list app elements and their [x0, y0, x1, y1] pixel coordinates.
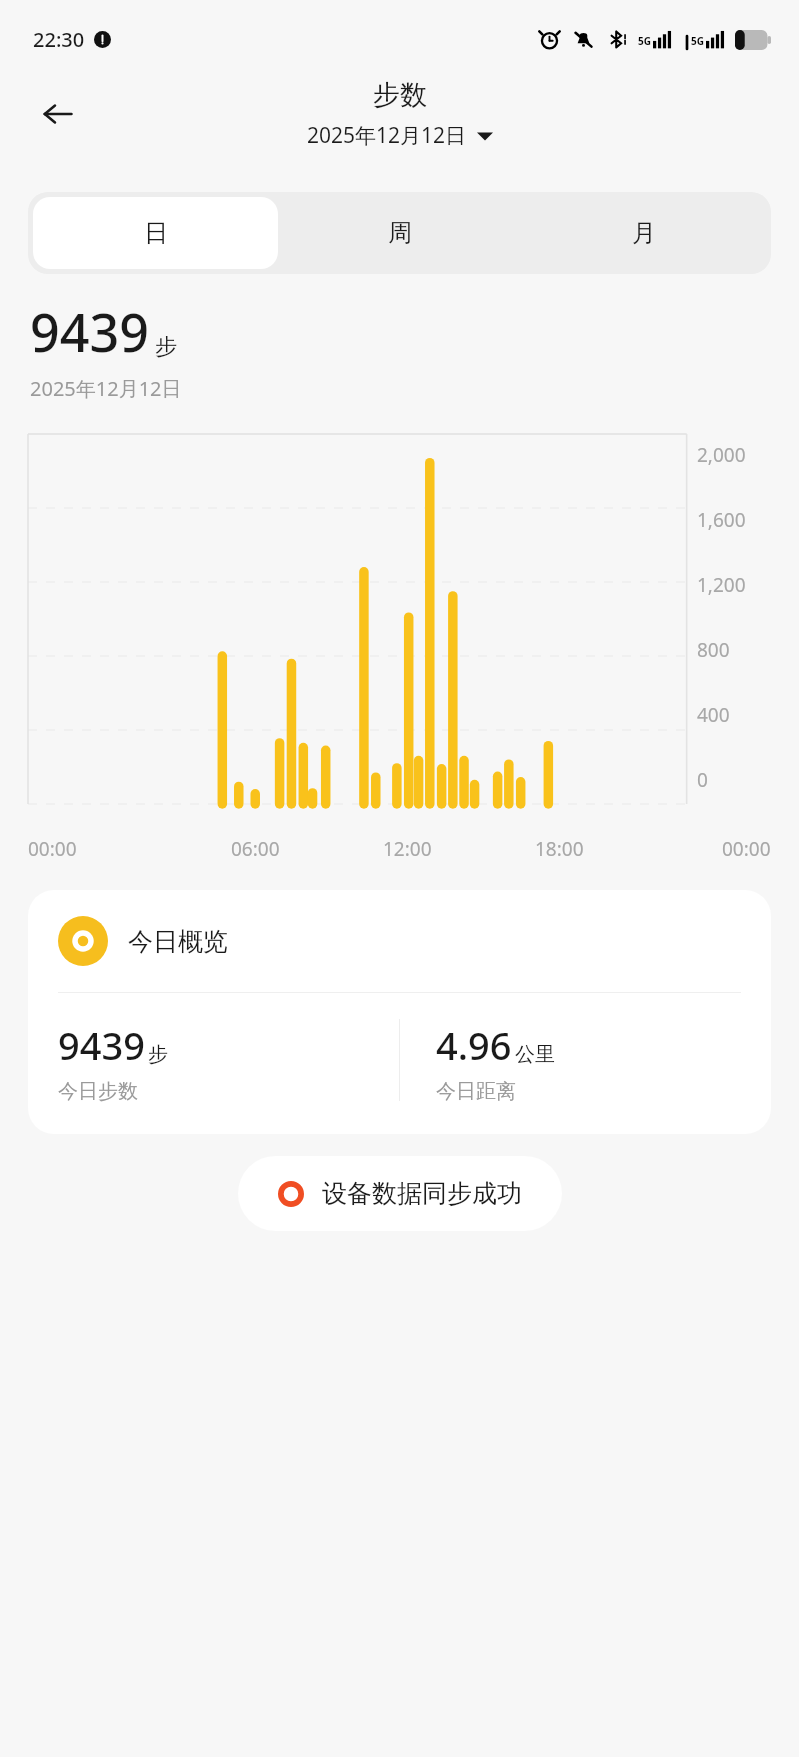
staticText: 2,000	[697, 442, 746, 468]
staticText: 4.96	[436, 1019, 512, 1071]
staticText: 1,200	[697, 572, 746, 598]
button[interactable]: 今日概览	[28, 890, 771, 1134]
staticText: 今日概览	[128, 926, 228, 957]
staticText: 步	[155, 333, 177, 361]
staticText: 步	[148, 1042, 168, 1067]
staticText: 1,600	[697, 507, 746, 533]
staticText: 步数	[373, 78, 427, 112]
staticText: 06:00	[231, 836, 280, 862]
staticText: 12:00	[383, 836, 432, 862]
staticText: 2025年12月12日	[307, 121, 467, 150]
button[interactable]: Back	[30, 86, 86, 142]
staticText: 9439	[58, 1019, 145, 1071]
button[interactable]: 日	[33, 197, 278, 269]
staticText: 公里	[515, 1042, 555, 1067]
staticText: 今日步数	[58, 1079, 138, 1104]
staticText: 设备数据同步成功	[322, 1178, 522, 1209]
staticText: 18:00	[535, 836, 584, 862]
button[interactable]: 月	[522, 197, 766, 269]
staticText: 今日距离	[436, 1079, 516, 1104]
staticText: 2025年12月12日	[30, 375, 182, 402]
staticText: 22:30	[33, 26, 85, 53]
button[interactable]: 周	[278, 197, 522, 269]
staticText: 400	[697, 702, 730, 728]
staticText: 5G	[638, 34, 651, 48]
staticText: 800	[697, 637, 730, 663]
staticText: 9439	[30, 296, 149, 367]
button[interactable]: 设备数据同步成功	[238, 1156, 562, 1231]
staticText: 日	[144, 218, 168, 248]
staticText: 月	[632, 218, 656, 248]
button[interactable]: 2025年12月12日	[303, 119, 497, 152]
staticText: 00:00	[28, 836, 77, 862]
staticText: 周	[388, 218, 412, 248]
staticText: 0	[697, 767, 708, 793]
staticText: 00:00	[722, 836, 771, 862]
staticText: 5G	[691, 34, 704, 48]
